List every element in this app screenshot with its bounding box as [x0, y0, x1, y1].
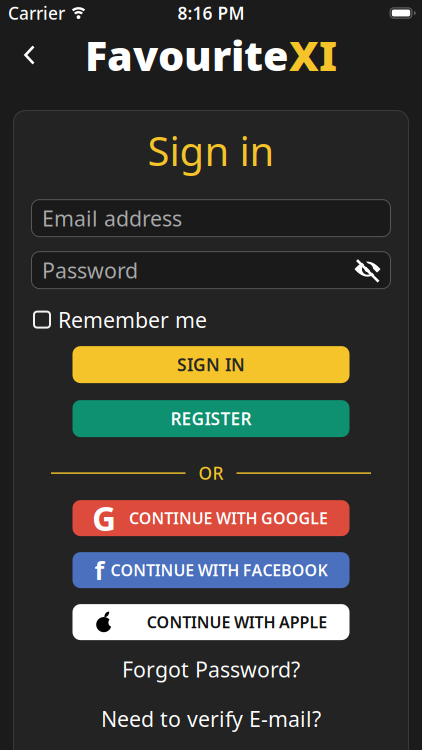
staticText: O	[120, 559, 133, 581]
staticText: Email address	[42, 204, 182, 232]
staticText: N	[206, 353, 220, 376]
staticText: O	[305, 559, 318, 581]
staticText: 8:16 PM	[177, 1, 244, 24]
staticText: T	[237, 507, 246, 529]
staticText: I	[213, 559, 219, 581]
staticText	[230, 611, 234, 633]
staticText: O	[292, 559, 305, 581]
staticText: I	[249, 611, 255, 633]
staticText: N	[179, 507, 192, 529]
staticText: L	[310, 507, 319, 529]
staticText: I	[155, 559, 161, 581]
staticText: I	[187, 353, 193, 376]
button[interactable]: Need to verify E-mail?	[101, 683, 321, 733]
staticText: Carrier	[8, 1, 65, 24]
staticText: T	[164, 507, 173, 529]
staticText	[275, 611, 279, 633]
staticText: N	[197, 611, 210, 633]
staticText: O	[139, 507, 152, 529]
staticText: Favourite	[85, 28, 289, 82]
staticText: C	[111, 559, 121, 581]
staticText: O	[157, 611, 170, 633]
staticText: G	[92, 496, 116, 540]
staticText: I	[231, 507, 237, 529]
staticText: C	[262, 559, 272, 581]
staticText: W	[216, 507, 231, 529]
button[interactable]: S	[72, 346, 349, 383]
staticText: E	[185, 559, 194, 581]
staticText: A	[279, 611, 290, 633]
staticText: O	[286, 507, 299, 529]
staticText: C	[129, 507, 139, 529]
staticText: G	[191, 407, 204, 430]
staticText: W	[198, 559, 213, 581]
staticText: G	[261, 507, 273, 529]
staticText: R	[240, 407, 251, 430]
staticText: G	[298, 507, 310, 529]
staticText: K	[317, 559, 327, 581]
button[interactable]: Forgot Password?	[122, 640, 300, 683]
staticText: O	[273, 507, 286, 529]
staticText: OR	[198, 462, 223, 485]
staticText: Remember me	[58, 305, 207, 334]
button[interactable]: Back	[0, 30, 36, 79]
staticText: T	[255, 611, 264, 633]
staticText: E	[318, 611, 327, 633]
staticText: E	[181, 407, 191, 430]
staticText: H	[245, 507, 257, 529]
staticText: N	[231, 353, 245, 376]
staticText: A	[252, 559, 263, 581]
staticText: E	[319, 507, 328, 529]
staticText: Forgot Password?	[122, 655, 300, 683]
staticText: Need to verify E-mail?	[101, 704, 321, 733]
staticText: I	[204, 407, 210, 430]
staticText: H	[227, 559, 239, 581]
staticText: E	[230, 407, 240, 430]
staticText: R	[170, 407, 181, 430]
staticText: S	[177, 353, 187, 376]
staticText: Password	[42, 256, 138, 284]
staticText: W	[234, 611, 249, 633]
staticText: f	[95, 553, 105, 587]
staticText: N	[161, 559, 174, 581]
button[interactable]: R	[72, 400, 349, 437]
staticText: N	[151, 507, 164, 529]
button[interactable]: f	[72, 552, 349, 588]
staticText: P	[290, 611, 300, 633]
staticText: L	[309, 611, 318, 633]
staticText: B	[281, 559, 292, 581]
staticText: E	[203, 507, 212, 529]
staticText: I	[173, 507, 179, 529]
staticText: U	[192, 507, 204, 529]
staticText: C	[147, 611, 157, 633]
staticText: H	[263, 611, 275, 633]
staticText: T	[218, 559, 227, 581]
staticText: Sign in	[147, 124, 274, 177]
staticText: F	[243, 559, 252, 581]
staticText: P	[300, 611, 310, 633]
staticText: E	[221, 611, 230, 633]
staticText: I	[191, 611, 197, 633]
button[interactable]: Show password	[354, 259, 381, 282]
staticText: T	[220, 407, 230, 430]
staticText: S	[210, 407, 220, 430]
staticText: U	[173, 559, 185, 581]
staticText: N	[133, 559, 146, 581]
button[interactable]: Remember me	[13, 310, 409, 329]
staticText: I	[225, 353, 231, 376]
staticText: N	[169, 611, 182, 633]
staticText: U	[210, 611, 222, 633]
staticText: G	[193, 353, 206, 376]
staticText: T	[146, 559, 155, 581]
staticText: E	[272, 559, 281, 581]
button[interactable]: G	[72, 500, 349, 536]
button[interactable]: C	[72, 604, 349, 640]
staticText: T	[182, 611, 191, 633]
staticText: XI	[289, 28, 337, 82]
